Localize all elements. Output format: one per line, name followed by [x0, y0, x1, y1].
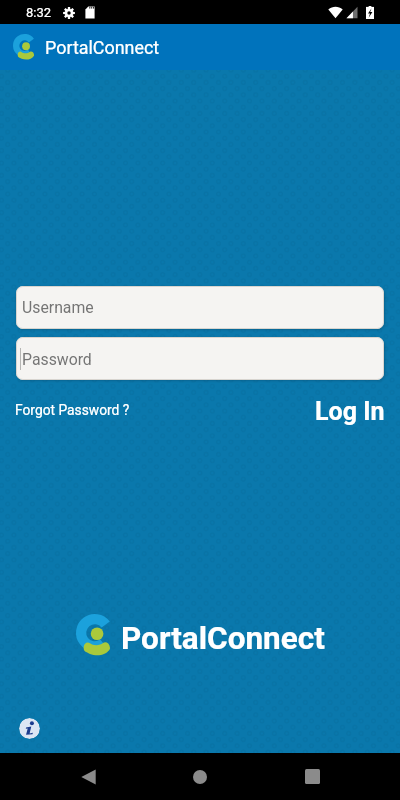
staticText: Log In [315, 397, 385, 426]
button[interactable]: Recents [288, 753, 336, 800]
button[interactable]: Username [16, 286, 384, 329]
staticText: 8:32 [26, 5, 52, 20]
staticText: Password [22, 350, 92, 369]
button[interactable]: Log In [311, 394, 389, 429]
button[interactable]: Information [19, 718, 40, 739]
staticText: Forgot Password ? [15, 402, 130, 418]
staticText: Username [22, 298, 94, 317]
staticText: PortalConnect [45, 37, 160, 58]
button[interactable]: Password [16, 337, 384, 380]
button[interactable]: Forgot Password ? [11, 397, 134, 423]
button[interactable]: Back [64, 753, 112, 800]
staticText: PortalConnect [121, 620, 325, 657]
button[interactable]: Home [176, 753, 224, 800]
